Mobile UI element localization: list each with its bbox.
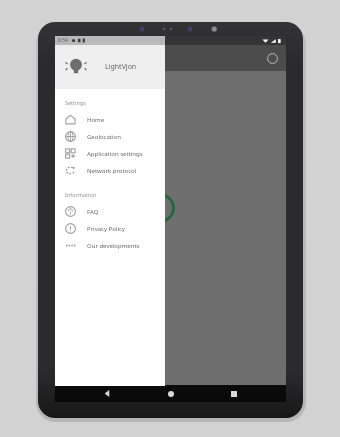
button[interactable]: Privacy Policy	[55, 220, 165, 237]
button[interactable]: Home	[55, 111, 165, 128]
staticText: Privacy Policy	[87, 225, 125, 233]
staticText: CONNECTED	[90, 201, 152, 215]
staticText: FAQ	[87, 208, 99, 216]
staticText: France Strasbourg	[65, 48, 112, 71]
button[interactable]: Our developments	[55, 237, 165, 254]
staticText: Geolocation	[87, 133, 121, 141]
button[interactable]: Recents	[223, 385, 245, 402]
staticText: Application settings	[87, 150, 143, 158]
staticText: LightVjon	[105, 62, 137, 72]
button[interactable]: FAQ	[55, 203, 165, 220]
button[interactable]: Help	[267, 53, 278, 64]
button[interactable]: Network protocol	[55, 162, 165, 179]
button[interactable]: Application settings	[55, 145, 165, 162]
staticText: 8:54	[58, 37, 68, 44]
staticText: Home	[87, 116, 105, 124]
staticText: Network protocol	[87, 167, 137, 175]
button[interactable]: Home	[160, 385, 182, 402]
staticText: Information	[65, 191, 97, 198]
button[interactable]: Back	[96, 385, 118, 402]
button[interactable]: CONNECTED	[67, 193, 175, 223]
staticText: Settings	[65, 99, 86, 106]
staticText: Our developments	[87, 242, 140, 250]
button[interactable]: Geolocation	[55, 128, 165, 145]
